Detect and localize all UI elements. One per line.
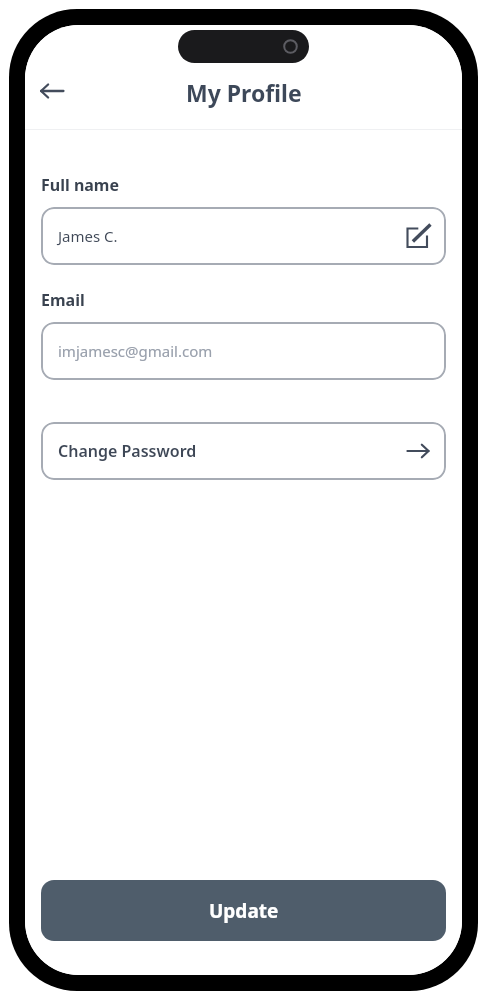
staticText: Change Password [58,440,197,462]
staticText: Update [209,898,279,924]
staticText: Email [41,289,85,311]
button[interactable]: Back [30,69,74,113]
button[interactable]: imjamesc@gmail.com [41,322,446,380]
staticText: My Profile [186,77,302,108]
button[interactable]: James C. [41,207,446,265]
button[interactable]: Update [41,880,446,941]
staticText: imjamesc@gmail.com [58,341,213,361]
button[interactable]: Edit full name [402,221,432,251]
staticText: James C. [58,226,118,246]
staticText: Full name [41,174,120,196]
button[interactable]: Change Password [41,422,446,480]
